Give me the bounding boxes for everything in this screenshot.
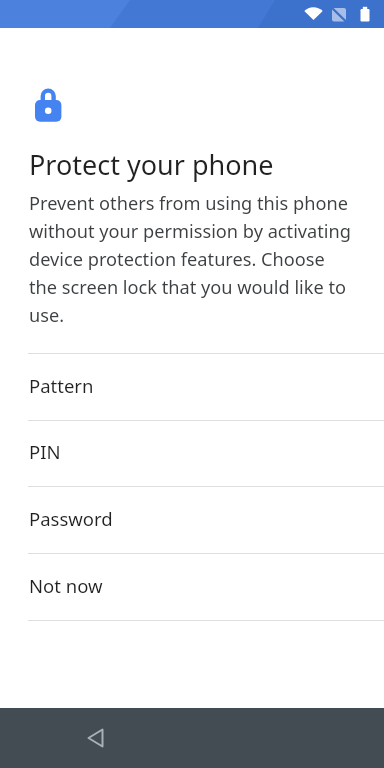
staticText: Pattern [29, 373, 94, 398]
staticText: Not now [29, 573, 103, 598]
button[interactable]: PIN [0, 421, 384, 486]
button[interactable] [72, 714, 120, 762]
staticText: Password [29, 506, 113, 531]
staticText: PIN [29, 439, 61, 464]
button[interactable]: Not now [0, 554, 384, 620]
button[interactable]: Pattern [0, 354, 384, 420]
staticText: Protect your phone [29, 146, 274, 183]
button[interactable]: Password [0, 487, 384, 553]
staticText: Prevent others from using this phone wit… [29, 191, 351, 327]
